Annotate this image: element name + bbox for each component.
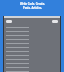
button[interactable] bbox=[4, 66, 60, 70]
button[interactable] bbox=[4, 46, 60, 50]
button[interactable] bbox=[4, 70, 60, 72]
button[interactable] bbox=[4, 42, 60, 46]
button[interactable] bbox=[4, 26, 60, 30]
button[interactable] bbox=[4, 62, 60, 66]
button[interactable] bbox=[4, 34, 60, 38]
button[interactable] bbox=[4, 54, 60, 58]
button[interactable] bbox=[4, 30, 60, 34]
button[interactable] bbox=[6, 20, 12, 23]
button[interactable] bbox=[4, 38, 60, 42]
button[interactable] bbox=[52, 20, 58, 23]
button[interactable] bbox=[4, 58, 60, 62]
staticText: Write Code. Create. Posts. Articles. bbox=[20, 2, 45, 10]
button[interactable] bbox=[4, 50, 60, 54]
